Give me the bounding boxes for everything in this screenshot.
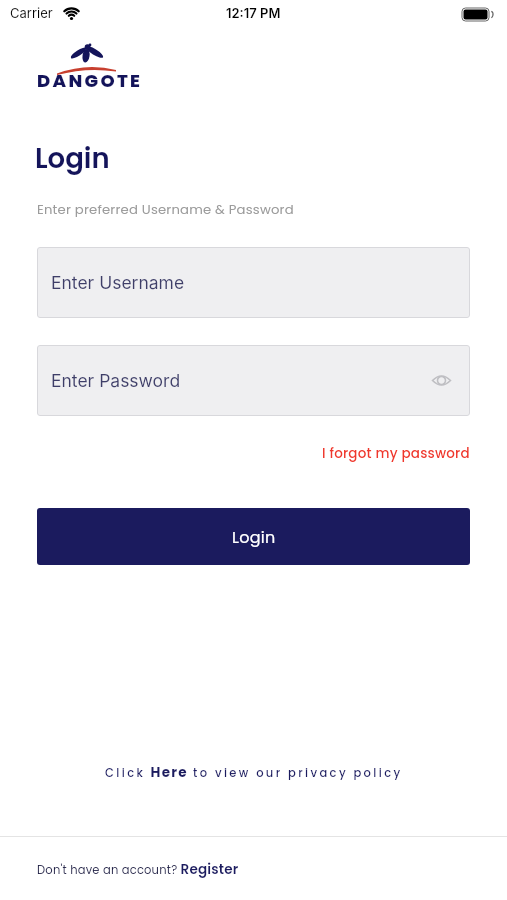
staticText: Login (35, 139, 110, 177)
staticText: I forgot my password (322, 444, 470, 463)
staticText: Login (232, 526, 276, 548)
staticText: Enter Username (51, 272, 185, 293)
staticText: Enter preferred Username & Password (37, 200, 294, 218)
staticText: Enter Password (51, 370, 181, 391)
staticText: Don't have an account? Register (37, 860, 239, 879)
staticText: Carrier (10, 5, 53, 21)
staticText: DANGOTE (37, 68, 143, 93)
staticText: Click Here to view our privacy policy (105, 763, 403, 782)
staticText: 12:17 PM (226, 5, 281, 21)
